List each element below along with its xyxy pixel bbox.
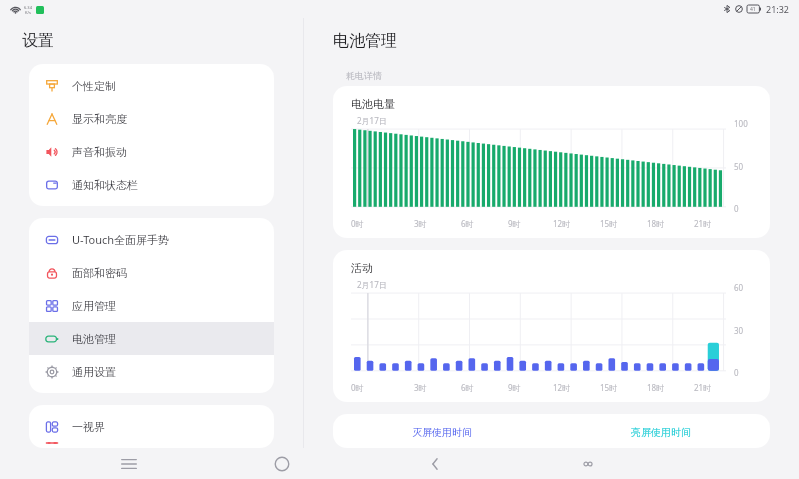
staticText: 9时 (508, 218, 521, 229)
staticText: 9时 (508, 382, 521, 393)
staticText: K/s (25, 10, 31, 15)
staticText: 0时 (351, 218, 364, 229)
staticText: 通用设置 (72, 365, 116, 379)
staticText: 21时 (694, 218, 712, 229)
button[interactable]: Home (266, 448, 297, 479)
button[interactable]: 应用管理 (29, 289, 274, 322)
button[interactable]: 通知和状态栏 (29, 168, 274, 201)
staticText: 18时 (647, 382, 665, 393)
staticText: 亮屏使用时间 (631, 426, 691, 439)
button[interactable]: U-Touch全面屏手势 (29, 223, 274, 256)
staticText: 3时 (414, 218, 427, 229)
staticText: 2月17日 (357, 279, 387, 290)
staticText: 12时 (553, 382, 571, 393)
button[interactable]: Back (419, 448, 450, 479)
staticText: 一视界 (72, 420, 105, 434)
button[interactable]: Menu (113, 448, 144, 479)
staticText: 6时 (461, 382, 474, 393)
staticText: 100 (734, 118, 748, 129)
staticText: 面部和密码 (72, 266, 127, 280)
staticText: 耗电详情 (346, 70, 382, 81)
staticText: 2月17日 (357, 115, 387, 126)
staticText: 声音和振动 (72, 145, 127, 159)
button[interactable]: Recents (572, 448, 603, 479)
button[interactable]: 通用设置 (29, 355, 274, 388)
staticText: 通知和状态栏 (72, 178, 138, 192)
button[interactable]: 电池管理 (29, 322, 274, 355)
staticText: 6.34 (24, 5, 32, 10)
staticText: 应用管理 (72, 299, 116, 313)
button[interactable]: 一视界 (29, 410, 274, 443)
staticText: 电池管理 (333, 31, 397, 51)
staticText: 18时 (647, 218, 665, 229)
staticText: 个性定制 (72, 79, 116, 93)
button[interactable]: 显示和亮度 (29, 102, 274, 135)
staticText: 设置 (22, 31, 54, 51)
staticText: 显示和亮度 (72, 112, 127, 126)
button[interactable]: 亮屏使用时间 (551, 426, 770, 439)
staticText: 灭屏使用时间 (412, 426, 472, 439)
staticText: 50 (734, 161, 744, 172)
button[interactable]: 声音和振动 (29, 135, 274, 168)
staticText: 电池电量 (351, 97, 395, 111)
staticText: 电池管理 (72, 332, 116, 346)
staticText: 30 (734, 325, 744, 336)
staticText: 12时 (553, 218, 571, 229)
staticText: 3时 (414, 382, 427, 393)
button[interactable]: 灭屏使用时间 (333, 426, 551, 439)
staticText: 0时 (351, 382, 364, 393)
staticText: U-Touch全面屏手势 (72, 232, 170, 247)
staticText: 活动 (351, 261, 373, 275)
staticText: 21:32 (766, 3, 790, 15)
staticText: 6时 (461, 218, 474, 229)
staticText: 0 (734, 367, 739, 378)
staticText: 60 (734, 282, 744, 293)
staticText: 15时 (600, 382, 618, 393)
staticText: 21时 (694, 382, 712, 393)
staticText: 15时 (600, 218, 618, 229)
staticText: 0 (734, 203, 739, 214)
button[interactable]: 个性定制 (29, 69, 274, 102)
button[interactable]: 面部和密码 (29, 256, 274, 289)
staticText: 41 (750, 6, 756, 13)
